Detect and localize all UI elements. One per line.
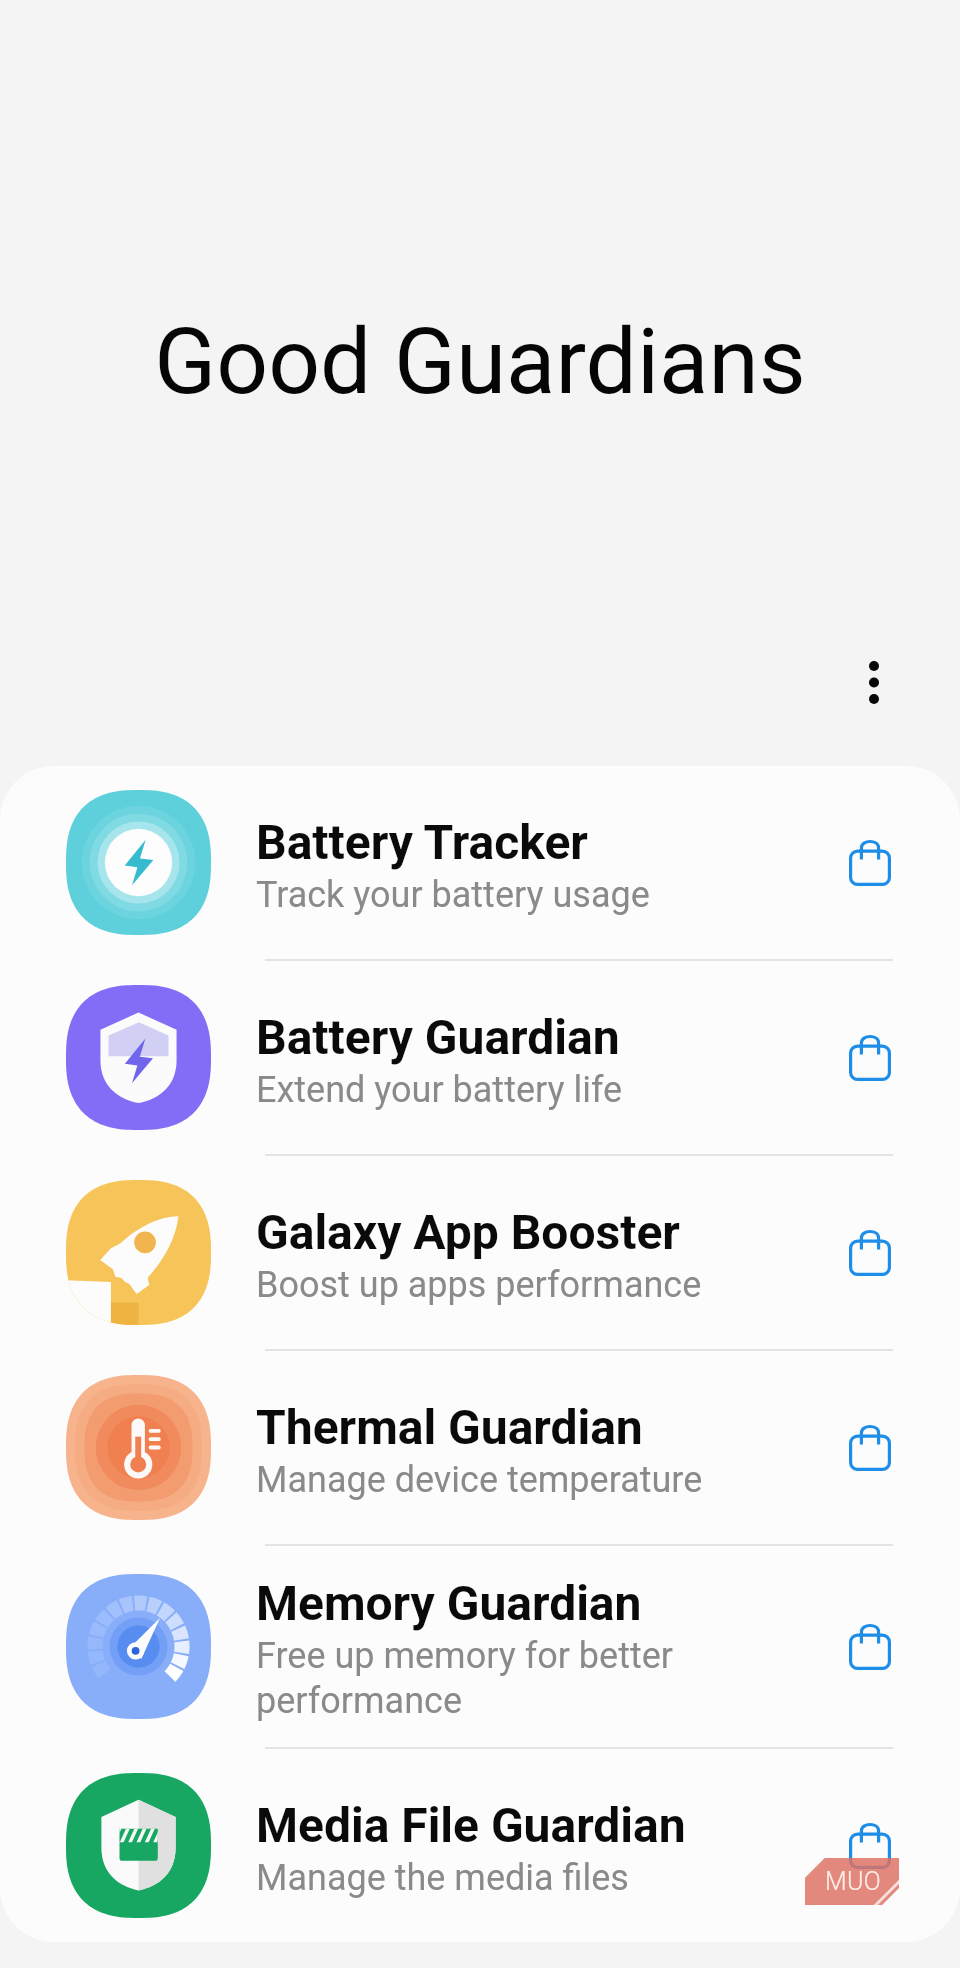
button[interactable]: Galaxy App Booster — [0, 1156, 960, 1351]
staticText: Manage the media files — [256, 1857, 629, 1899]
staticText: Boost up apps performance — [256, 1264, 702, 1306]
staticText: Extend your battery life — [256, 1069, 623, 1111]
staticText: Galaxy App Booster — [256, 1204, 680, 1260]
button[interactable]: Open in Galaxy Store — [779, 798, 960, 928]
button[interactable]: More options — [825, 634, 922, 731]
button[interactable]: Battery Tracker — [0, 766, 960, 961]
staticText: MUO — [825, 1867, 882, 1896]
button[interactable]: Open in Galaxy Store — [779, 1582, 960, 1712]
staticText: Free up memory for better performance — [256, 1635, 673, 1722]
staticText: Thermal Guardian — [256, 1399, 643, 1455]
button[interactable]: Open in Galaxy Store — [779, 1383, 960, 1513]
staticText: Battery Guardian — [256, 1009, 620, 1065]
button[interactable]: Memory Guardian — [0, 1546, 960, 1749]
button[interactable]: Open in Galaxy Store — [779, 1188, 960, 1318]
button[interactable]: Thermal Guardian — [0, 1351, 960, 1546]
staticText: Media File Guardian — [256, 1797, 686, 1853]
button[interactable]: Media File Guardian — [0, 1749, 960, 1942]
button[interactable]: Battery Guardian — [0, 961, 960, 1156]
button[interactable]: Open in Galaxy Store — [779, 993, 960, 1123]
staticText: Manage device temperature — [256, 1459, 703, 1501]
staticText: Track your battery usage — [256, 874, 650, 916]
staticText: Battery Tracker — [256, 814, 588, 870]
staticText: Memory Guardian — [256, 1575, 642, 1631]
staticText: Good Guardians — [154, 309, 806, 416]
button[interactable]: Open in Galaxy Store — [779, 1781, 960, 1911]
